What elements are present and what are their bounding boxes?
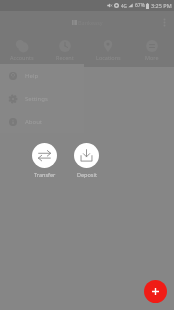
button[interactable]: Recent — [43, 33, 86, 67]
staticText: Recent — [56, 54, 74, 61]
staticText: Settings — [25, 95, 48, 103]
button[interactable]: Accounts — [0, 33, 43, 67]
button[interactable]: Add — [144, 280, 167, 303]
staticText: More — [145, 54, 159, 61]
staticText: Locations — [96, 54, 121, 61]
staticText: 3:25 PM — [151, 2, 172, 9]
staticText: About — [25, 118, 43, 126]
button[interactable]: Transfer — [32, 143, 57, 178]
staticText: Accounts — [10, 54, 34, 61]
staticText: 67% — [135, 2, 145, 9]
staticText: Transfer — [34, 171, 56, 178]
staticText: 4G — [121, 3, 127, 9]
staticText: Deposit — [77, 171, 97, 178]
button[interactable]: Deposit — [74, 143, 99, 178]
staticText: Help — [25, 72, 39, 80]
